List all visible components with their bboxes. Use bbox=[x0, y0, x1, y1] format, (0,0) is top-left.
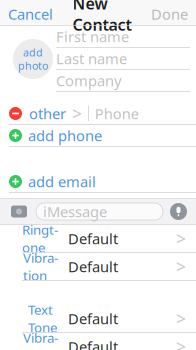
staticText: Default bbox=[68, 229, 118, 248]
staticText: > bbox=[176, 255, 186, 278]
staticText: Ringtone bbox=[22, 221, 58, 256]
staticText: Vibration bbox=[23, 329, 58, 350]
button[interactable]: Done bbox=[143, 2, 196, 26]
staticText: Default bbox=[68, 309, 118, 328]
button[interactable]: Ringtone bbox=[0, 225, 196, 253]
staticText: Last name bbox=[56, 49, 127, 68]
button[interactable]: Cancel bbox=[0, 2, 61, 26]
staticText: add email bbox=[28, 172, 96, 191]
button[interactable]: Vibration bbox=[0, 253, 196, 281]
staticText: photo bbox=[18, 58, 48, 73]
staticText: iMessage bbox=[43, 202, 107, 221]
button[interactable]: other bbox=[0, 103, 196, 125]
staticText: Vibration bbox=[23, 249, 58, 284]
button[interactable]: add phone bbox=[0, 125, 196, 147]
button[interactable]: Record audio message bbox=[170, 203, 187, 220]
button[interactable]: Take photo bbox=[9, 203, 29, 219]
staticText: > bbox=[176, 227, 186, 250]
staticText: add phone bbox=[28, 126, 102, 145]
button[interactable]: Text Tone bbox=[0, 305, 196, 333]
staticText: add bbox=[23, 45, 43, 59]
staticText: Text Tone bbox=[28, 301, 58, 336]
staticText: Cancel bbox=[8, 4, 53, 24]
staticText: Default bbox=[68, 337, 118, 350]
button[interactable]: add email bbox=[0, 171, 196, 193]
staticText: other bbox=[29, 104, 66, 123]
button[interactable]: Vibration bbox=[0, 333, 196, 350]
button[interactable]: Add photo bbox=[10, 27, 56, 91]
staticText: > bbox=[72, 102, 82, 125]
staticText: Done bbox=[151, 4, 188, 24]
staticText: First name bbox=[56, 27, 129, 46]
staticText: Phone bbox=[95, 104, 139, 123]
staticText: New Contact bbox=[72, 0, 131, 35]
staticText: > bbox=[176, 335, 186, 350]
staticText: Company bbox=[56, 71, 121, 90]
staticText: Default bbox=[68, 257, 118, 276]
staticText: > bbox=[176, 307, 186, 330]
